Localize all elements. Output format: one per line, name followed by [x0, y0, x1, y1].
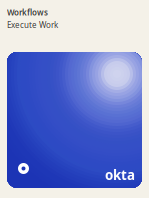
staticText: okta	[105, 166, 135, 184]
staticText: Workflows	[7, 7, 48, 18]
staticText: Execute Work	[7, 20, 58, 30]
